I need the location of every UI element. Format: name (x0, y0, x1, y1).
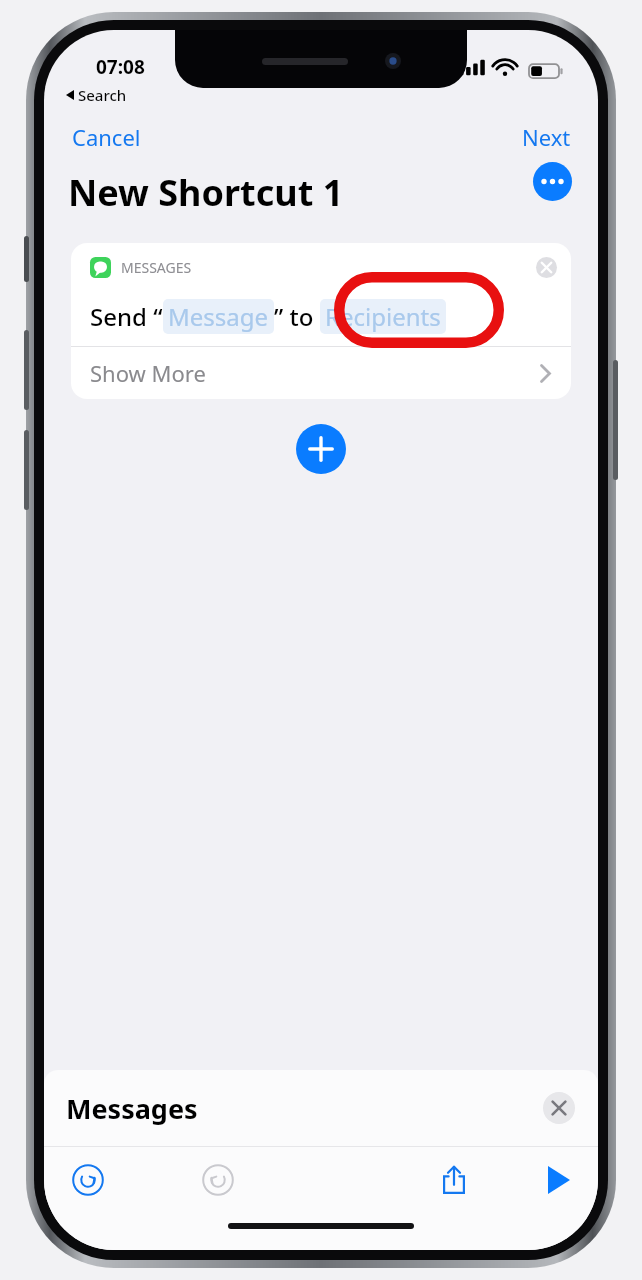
button[interactable]: Redo (194, 1156, 242, 1204)
staticText: 07:08 (96, 54, 145, 80)
button[interactable]: Remove action (529, 250, 563, 284)
button[interactable]: Send “ (71, 291, 571, 346)
button[interactable]: Search (62, 83, 131, 107)
staticText: Message (168, 300, 269, 333)
button[interactable]: Close (542, 1091, 576, 1125)
staticText: Show More (90, 358, 206, 388)
button[interactable]: Run shortcut (534, 1156, 582, 1204)
button[interactable]: Add action (295, 423, 347, 475)
staticText: Recipients (325, 300, 441, 333)
staticText: ” to (274, 300, 320, 333)
staticText: Send “ (90, 300, 163, 333)
staticText: Search (78, 85, 127, 105)
staticText: Cancel (72, 122, 141, 152)
staticText: New Shortcut 1 (68, 168, 344, 217)
button[interactable]: Undo (64, 1156, 112, 1204)
staticText: Next (522, 122, 571, 152)
button[interactable]: Next (512, 116, 581, 158)
button[interactable]: More options (529, 158, 575, 204)
button[interactable]: Show More (71, 347, 571, 399)
button[interactable]: Cancel (62, 116, 151, 158)
staticText: MESSAGES (121, 258, 192, 277)
staticText: Messages (66, 1090, 198, 1127)
button[interactable]: Share (430, 1156, 478, 1204)
